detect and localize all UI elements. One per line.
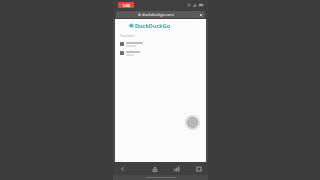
staticText: DuckDuckGo	[135, 22, 171, 29]
staticText: 1:00	[122, 3, 130, 8]
button[interactable]: Share	[149, 162, 160, 175]
staticText: duckduckgo.com	[142, 12, 175, 17]
button[interactable]: DuckDuckGo	[129, 22, 171, 29]
button[interactable]: Record	[185, 115, 200, 130]
button[interactable]: Bookmarks	[171, 162, 182, 175]
button[interactable]	[120, 41, 201, 47]
staticText: Favorites	[120, 33, 135, 38]
button[interactable]: duckduckgo.com	[116, 11, 205, 18]
button[interactable]: Back	[117, 162, 128, 175]
button[interactable]: Close tab	[198, 12, 203, 17]
button[interactable]	[120, 50, 201, 56]
button[interactable]: Tabs	[193, 162, 204, 175]
